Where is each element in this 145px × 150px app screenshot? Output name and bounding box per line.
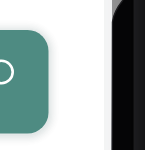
other: Device — [0, 0, 145, 150]
button[interactable]: App tile — [0, 0, 145, 150]
